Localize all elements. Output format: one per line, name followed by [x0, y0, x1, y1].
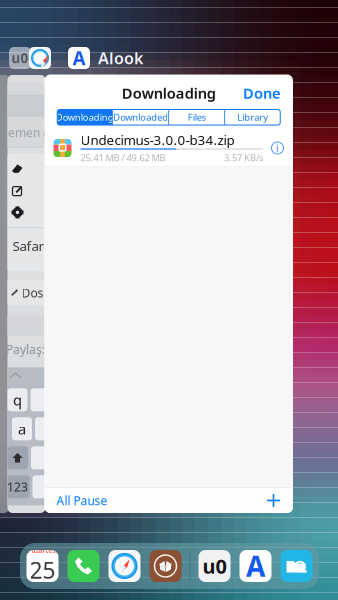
button[interactable]: Add download	[266, 493, 281, 508]
button[interactable]: Library	[225, 109, 280, 125]
staticText: u0	[11, 49, 28, 67]
staticText: A	[72, 46, 85, 70]
staticText: Downloading	[56, 111, 114, 123]
staticText: Files	[188, 111, 206, 123]
staticText: Downloading	[122, 83, 216, 103]
button[interactable]: Files	[169, 109, 224, 125]
button[interactable]: Alook	[239, 550, 271, 582]
staticText: 25	[29, 555, 55, 585]
staticText: All Pause	[56, 492, 107, 508]
staticText: Dos	[21, 285, 43, 301]
button[interactable]: Downloading	[57, 109, 112, 125]
staticText: Library	[237, 111, 268, 123]
button[interactable]: Files	[280, 550, 312, 582]
staticText: Hemen d	[0, 125, 50, 141]
staticText: Alook	[98, 47, 143, 69]
staticText: i	[276, 141, 279, 155]
staticText: 3.57 KB/s	[224, 151, 263, 164]
button[interactable]: Calendar	[26, 550, 58, 582]
button[interactable]: Cydia	[149, 550, 181, 582]
staticText: A	[246, 547, 265, 585]
button[interactable]: Safari	[108, 550, 140, 582]
staticText: Pazartesi	[27, 546, 57, 555]
staticText: 123	[7, 479, 28, 495]
button[interactable]: Downloaded	[113, 109, 168, 125]
staticText: u0	[202, 553, 226, 579]
staticText: 25.41 MB / 49.62 MB	[80, 151, 165, 164]
button[interactable]: Done	[233, 79, 281, 107]
staticText: a	[18, 419, 26, 439]
button[interactable]: Phone	[67, 550, 99, 582]
staticText: Done	[243, 83, 281, 103]
button[interactable]: All Pause	[56, 487, 117, 513]
staticText: Safar	[12, 237, 44, 255]
staticText: Downloaded	[113, 111, 168, 123]
staticText: Paylaş:	[6, 341, 45, 357]
button[interactable]: unc0ver	[198, 550, 230, 582]
staticText: Undecimus-3.0.0-b34.zip	[80, 131, 234, 149]
staticText: q	[13, 390, 22, 410]
